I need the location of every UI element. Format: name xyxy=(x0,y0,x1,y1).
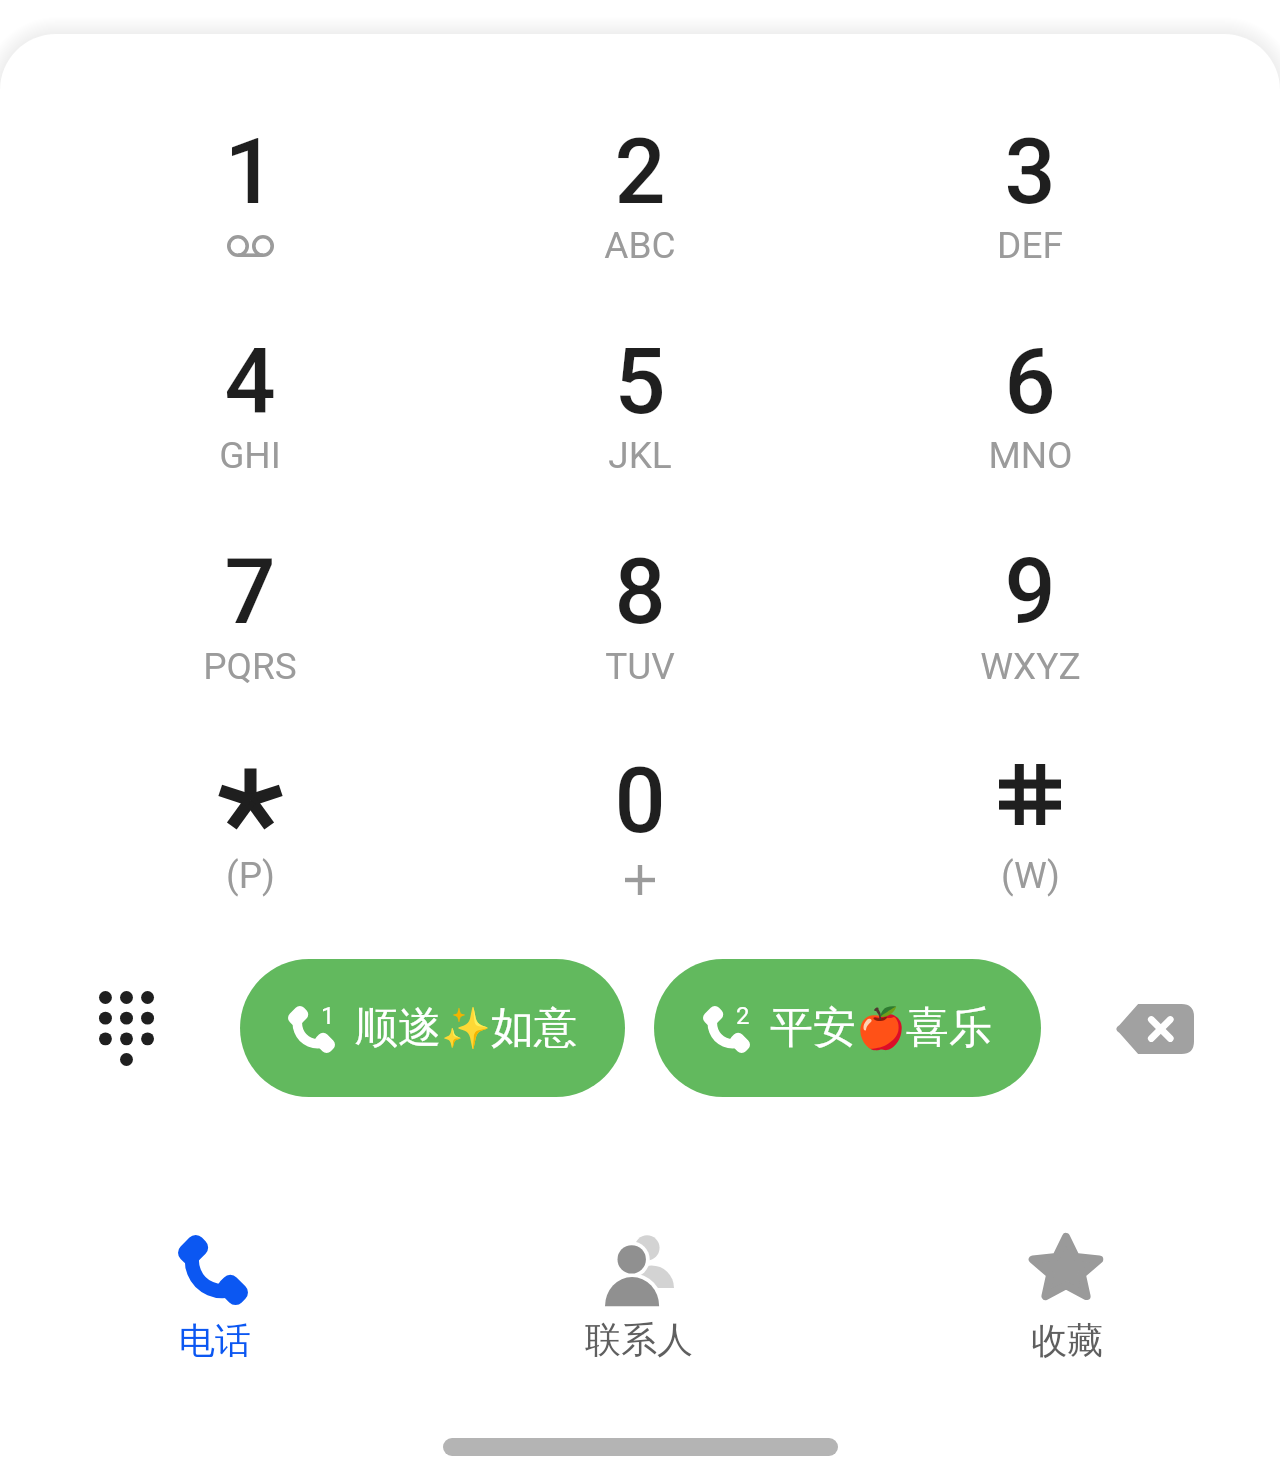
staticText: 8 xyxy=(614,540,666,645)
staticText: ABC xyxy=(604,224,676,267)
button[interactable]: 7 xyxy=(125,523,375,708)
staticText: PQRS xyxy=(203,645,297,688)
staticText: JKL xyxy=(608,434,672,477)
button[interactable]: 0 xyxy=(515,732,765,917)
staticText: 2 xyxy=(614,120,666,225)
button[interactable]: 6 xyxy=(905,313,1155,498)
button[interactable]: 联系人 xyxy=(449,1188,829,1378)
button[interactable]: 1 xyxy=(125,103,375,288)
staticText: 0 xyxy=(614,749,666,854)
staticText: 3 xyxy=(1004,120,1056,225)
staticText: DEF xyxy=(997,224,1063,267)
staticText: 🍎 xyxy=(856,1005,906,1052)
staticText: 收藏 xyxy=(1031,1318,1103,1363)
button[interactable]: 3 xyxy=(905,103,1155,288)
staticText: TUV xyxy=(605,645,675,688)
staticText: 7 xyxy=(224,540,276,645)
staticText: 电话 xyxy=(179,1318,251,1363)
button[interactable]: 2 xyxy=(515,103,765,288)
button[interactable]: Show dialpad xyxy=(56,958,196,1098)
staticText: (W) xyxy=(1001,854,1060,897)
staticText: 1 xyxy=(321,1002,335,1030)
button[interactable]: 收藏 xyxy=(877,1186,1257,1376)
button[interactable]: 4 xyxy=(125,313,375,498)
staticText: 如意 xyxy=(491,1001,577,1055)
staticText: 2 xyxy=(736,1002,750,1030)
staticText: 4 xyxy=(224,330,276,435)
staticText: MNO xyxy=(988,434,1073,477)
staticText: 平安 xyxy=(770,1001,856,1055)
staticText: 联系人 xyxy=(585,1317,693,1362)
button[interactable]: Call with SIM 2 xyxy=(654,959,1041,1097)
staticText: 顺遂 xyxy=(355,1001,441,1055)
staticText: 6 xyxy=(1004,330,1056,435)
button[interactable]: 5 xyxy=(515,313,765,498)
staticText: (P) xyxy=(226,854,275,897)
staticText: ✨ xyxy=(441,1005,491,1052)
staticText: GHI xyxy=(219,434,281,477)
staticText: 9 xyxy=(1004,540,1056,645)
button[interactable]: Star xyxy=(125,732,375,917)
staticText: 5 xyxy=(614,330,666,435)
button[interactable]: 9 xyxy=(905,523,1155,708)
button[interactable]: 8 xyxy=(515,523,765,708)
button[interactable]: Pound xyxy=(905,732,1155,917)
button[interactable]: Backspace xyxy=(1084,964,1222,1094)
staticText: 喜乐 xyxy=(906,1001,992,1055)
button[interactable]: 电话 xyxy=(25,1189,405,1379)
staticText: 1 xyxy=(224,120,276,225)
button[interactable]: Call with SIM 1 xyxy=(240,959,625,1097)
staticText: WXYZ xyxy=(980,645,1081,688)
